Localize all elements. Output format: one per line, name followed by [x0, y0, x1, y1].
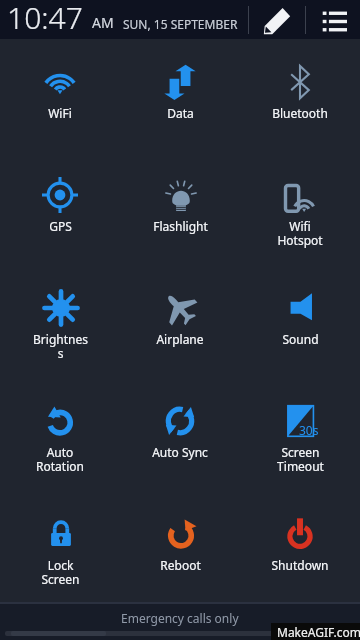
staticText: Flashlight	[153, 218, 208, 234]
staticText: Airplane	[156, 331, 204, 347]
button[interactable]: Reboot	[120, 491, 240, 602]
button[interactable]: Brightnes s	[0, 265, 120, 378]
staticText: Shutdown	[271, 557, 329, 573]
staticText: Auto Sync	[152, 444, 208, 460]
staticText: Wifi Hotspot	[277, 218, 323, 249]
staticText: 30s	[299, 422, 319, 438]
staticText: Auto Rotation	[36, 444, 84, 475]
button[interactable]: Sound	[240, 265, 360, 378]
staticText: Reboot	[160, 557, 201, 573]
button[interactable]: Edit	[249, 0, 305, 39]
staticText: GPS	[49, 218, 72, 234]
button[interactable]: Lock Screen	[0, 491, 120, 602]
staticText: Sound	[282, 331, 319, 347]
button[interactable]: Airplane	[120, 265, 240, 378]
staticText: MakeAGIF.com	[277, 624, 360, 640]
staticText: Lock Screen	[41, 557, 80, 588]
button[interactable]: List view	[306, 0, 360, 39]
button[interactable]: Auto Sync	[120, 378, 240, 491]
staticText: 10:47	[7, 0, 83, 36]
button[interactable]: GPS	[0, 152, 120, 265]
staticText: Brightnes s	[33, 331, 88, 362]
button[interactable]: Data	[120, 39, 240, 152]
button[interactable]: WiFi	[0, 39, 120, 152]
staticText: AM	[92, 13, 114, 32]
staticText: SUN, 15 SEPTEMBER	[123, 16, 238, 32]
staticText: Data	[167, 105, 194, 121]
button[interactable]: 30s	[240, 378, 360, 491]
staticText: Bluetooth	[272, 105, 328, 121]
button[interactable]: Shutdown	[240, 491, 360, 602]
button[interactable]: Flashlight	[120, 152, 240, 265]
button[interactable]: Wifi Hotspot	[240, 152, 360, 265]
button[interactable]: Auto Rotation	[0, 378, 120, 491]
staticText: Emergency calls only	[121, 610, 239, 626]
button[interactable]: Bluetooth	[240, 39, 360, 152]
staticText: WiFi	[48, 105, 72, 121]
staticText: Screen Timeout	[277, 444, 324, 475]
